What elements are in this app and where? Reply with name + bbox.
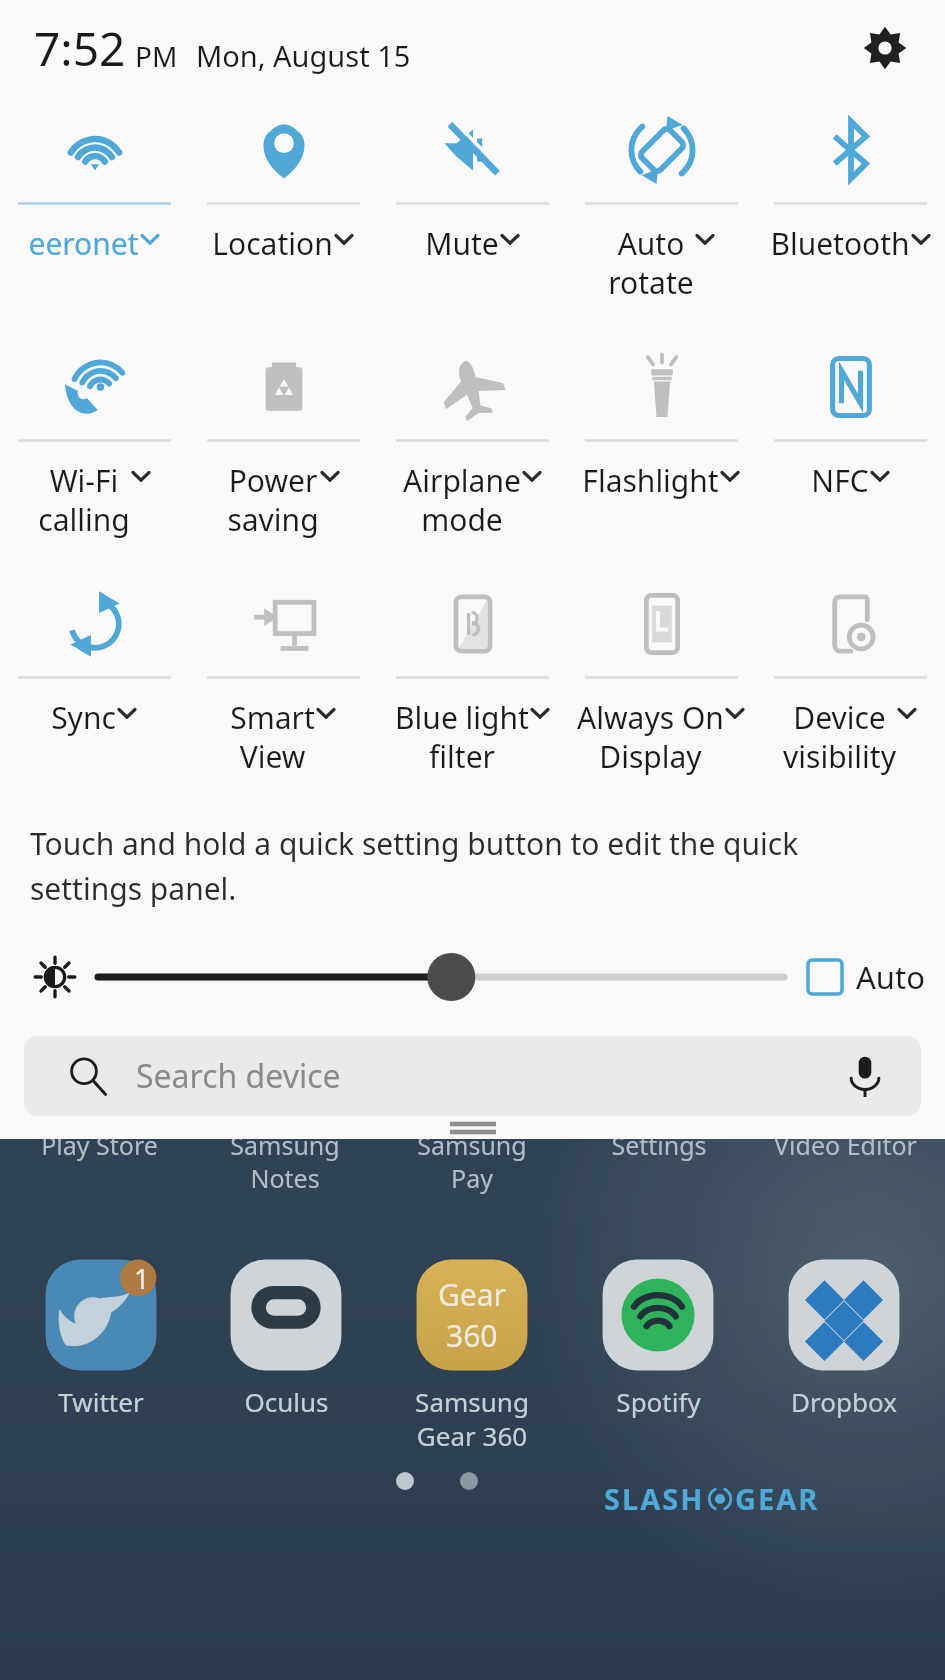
staticText: 7:52 <box>34 17 126 80</box>
button[interactable]: Voice search <box>835 1046 895 1106</box>
button[interactable]: Settings <box>853 16 917 80</box>
staticText: Auto rotate <box>608 223 694 302</box>
staticText: Spotify <box>616 1384 701 1419</box>
staticText: Search device <box>136 1054 341 1098</box>
staticText: Mute <box>425 223 499 264</box>
staticText: NFC <box>811 460 869 501</box>
staticText: Always On Display <box>577 697 724 776</box>
staticText: PM <box>135 37 178 75</box>
staticText: Samsung Notes <box>230 1128 340 1195</box>
staticText: Wi-Fi calling <box>38 460 130 539</box>
staticText: Video Editor <box>774 1128 917 1162</box>
staticText: Power saving <box>227 460 319 539</box>
button[interactable]: Flashlight <box>567 333 756 570</box>
staticText: Mon, August 15 <box>196 36 411 75</box>
staticText: 360 <box>446 1315 498 1356</box>
button[interactable]: 7:52 <box>34 17 411 80</box>
button[interactable]: Gear <box>379 1252 565 1453</box>
staticText: Auto <box>856 956 925 998</box>
button[interactable]: Search device <box>24 1036 921 1116</box>
staticText: Twitter <box>58 1384 144 1419</box>
staticText: Device visibility <box>783 697 896 776</box>
staticText: 1 <box>134 1260 150 1297</box>
staticText: SLASH <box>604 1479 705 1518</box>
button[interactable]: Power saving <box>189 333 378 570</box>
staticText: Location <box>212 223 333 264</box>
button[interactable]: Location <box>189 96 378 333</box>
button[interactable]: Smart View <box>189 570 378 807</box>
button[interactable]: Mute <box>378 96 567 333</box>
button[interactable]: Bluetooth <box>756 96 945 333</box>
button[interactable]: 1 <box>8 1252 193 1419</box>
staticText: Gear <box>438 1274 506 1315</box>
staticText: eeronet <box>28 223 139 264</box>
button[interactable]: Spotify <box>565 1252 751 1419</box>
button[interactable]: Auto rotate <box>567 96 756 333</box>
staticText: Settings <box>611 1128 707 1162</box>
button[interactable]: Device visibility <box>756 570 945 807</box>
button[interactable]: Blue light filter <box>378 570 567 807</box>
button[interactable]: Oculus <box>193 1252 379 1419</box>
button[interactable]: Airplane mode <box>378 333 567 570</box>
button[interactable]: Brightness <box>26 948 84 1006</box>
staticText: Samsung Pay <box>417 1128 527 1195</box>
staticText: Oculus <box>244 1384 329 1419</box>
staticText: Bluetooth <box>770 223 910 264</box>
staticText: Dropbox <box>791 1384 897 1419</box>
button[interactable]: Sync <box>0 570 189 807</box>
button[interactable] <box>450 1119 496 1137</box>
button[interactable] <box>98 949 784 1005</box>
staticText: Flashlight <box>582 460 719 501</box>
staticText: GEAR <box>735 1479 820 1518</box>
button[interactable]: NFC <box>756 333 945 570</box>
staticText: Play Store <box>41 1128 158 1162</box>
staticText: Blue light filter <box>395 697 529 776</box>
staticText: Sync <box>51 697 116 738</box>
button[interactable]: Wi-Fi calling <box>0 333 189 570</box>
button[interactable]: Auto <box>808 956 925 998</box>
button[interactable]: Always On Display <box>567 570 756 807</box>
button[interactable]: eeronet <box>0 96 189 333</box>
staticText: Samsung Gear 360 <box>415 1384 529 1453</box>
button[interactable]: Dropbox <box>751 1252 937 1419</box>
staticText: Airplane mode <box>403 460 521 539</box>
staticText: Touch and hold a quick setting button to… <box>30 823 901 908</box>
staticText: Smart View <box>230 697 315 776</box>
